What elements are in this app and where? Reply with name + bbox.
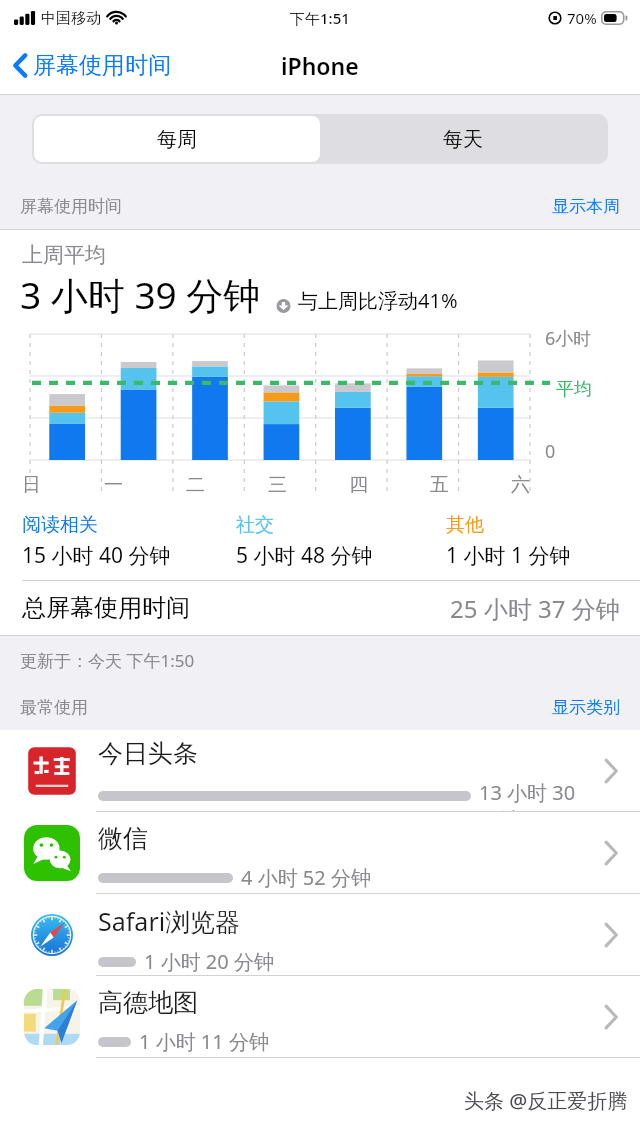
staticText: 六 [511,473,530,497]
staticText: 五 [430,473,449,497]
staticText: 高德地图 [98,987,198,1018]
staticText: 下午1:51 [290,8,350,28]
button[interactable]: 每天 [320,116,606,162]
staticText: iPhone [281,50,359,81]
staticText: 今日头条 [98,738,198,769]
staticText: 3 小时 39 分钟 [20,269,261,320]
staticText: 5 小时 48 分钟 [236,541,373,570]
staticText: 13 小时 30 分钟 [479,779,598,812]
staticText: Safari浏览器 [98,904,241,938]
staticText: 阅读相关 [22,513,98,537]
staticText: 三 [268,473,287,497]
staticText: 每周 [157,127,197,152]
button[interactable]: 高德地图 [0,976,640,1058]
other: 查看详情 [604,922,618,948]
staticText: 1 小时 1 分钟 [446,541,571,570]
staticText: 15 小时 40 分钟 [22,541,171,570]
button[interactable]: 显示本周 [532,188,640,225]
staticText: 头条 @反正爱折腾 [464,1087,628,1114]
staticText: 25 小时 37 分钟 [450,592,620,625]
staticText: 1 小时 11 分钟 [139,1028,269,1055]
staticText: 屏幕使用时间 [33,51,171,80]
staticText: 中国移动 [41,9,101,28]
button[interactable]: 微信 [0,812,640,894]
staticText: 与上周比浮动41% [298,287,458,314]
staticText: 总屏幕使用时间 [22,593,190,623]
button[interactable]: Safari浏览器 [0,894,640,976]
staticText: 平均 [556,378,592,401]
staticText: 屏幕使用时间 [20,196,122,217]
other: 查看详情 [604,758,618,784]
staticText: 0 [545,439,556,464]
staticText: 日 [22,473,41,497]
staticText: 四 [349,473,368,497]
staticText: 显示本周 [552,196,620,217]
staticText: 社交 [236,513,274,537]
staticText: 二 [186,473,205,497]
staticText: 4 小时 52 分钟 [241,864,371,891]
staticText: 一 [104,473,123,497]
staticText: 每天 [443,127,483,152]
button[interactable]: 今日头条 [0,730,640,812]
staticText: 最常使用 [20,697,88,718]
other: 查看详情 [604,1004,618,1030]
button[interactable]: 显示类别 [532,689,640,726]
staticText: 上周平均 [22,242,106,268]
staticText: 70% [567,8,597,28]
staticText: 1 小时 20 分钟 [144,948,274,975]
staticText: 显示类别 [552,697,620,718]
staticText: 其他 [446,513,484,537]
button[interactable]: 屏幕使用时间 [10,43,175,88]
other: 查看详情 [604,840,618,866]
staticText: 6小时 [545,326,592,351]
staticText: 微信 [98,823,148,854]
staticText: 更新于：今天 下午1:50 [20,649,195,672]
button[interactable]: 每周 [34,116,320,162]
